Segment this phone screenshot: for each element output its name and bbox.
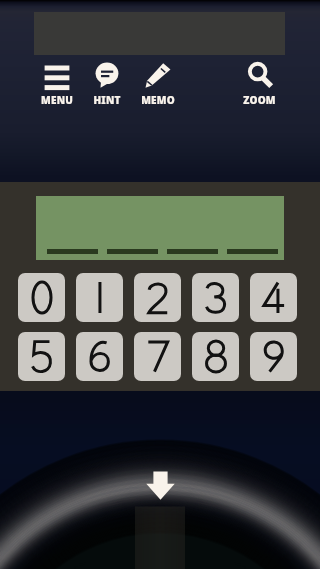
button[interactable] [134, 332, 181, 381]
button[interactable]: ZOOM [235, 62, 283, 106]
button[interactable] [192, 332, 239, 381]
button[interactable] [76, 273, 123, 322]
staticText: ZOOM [243, 93, 276, 106]
staticText: HINT [93, 93, 121, 106]
button[interactable] [134, 273, 181, 322]
staticText: MENU [41, 93, 73, 106]
button[interactable] [76, 332, 123, 381]
button[interactable] [250, 273, 297, 322]
button[interactable]: MENU [33, 62, 81, 106]
button[interactable]: Move down [146, 471, 175, 500]
button[interactable]: HINT [83, 62, 131, 106]
button[interactable] [250, 332, 297, 381]
button[interactable]: MEMO [134, 62, 182, 106]
staticText: MEMO [141, 93, 175, 106]
button[interactable] [18, 332, 65, 381]
button[interactable] [18, 273, 65, 322]
button[interactable] [192, 273, 239, 322]
